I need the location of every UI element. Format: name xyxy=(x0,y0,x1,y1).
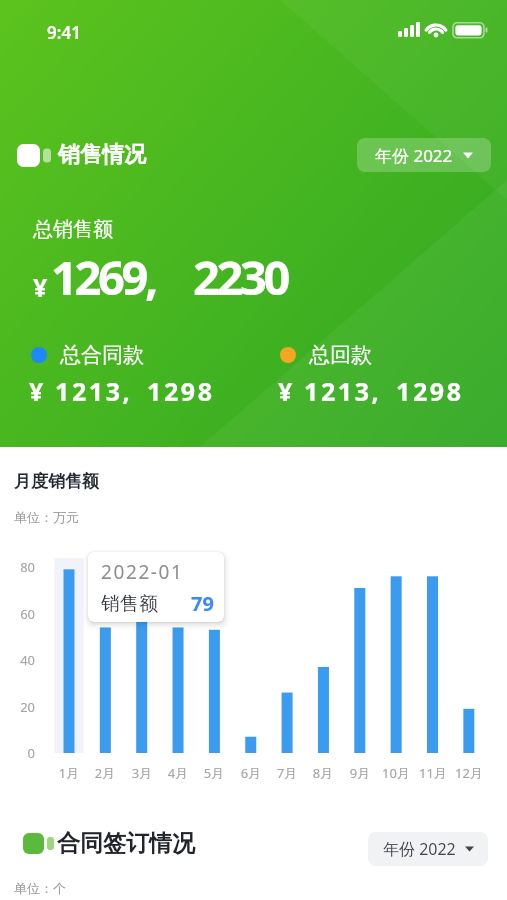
staticText: 总回款 xyxy=(309,342,372,368)
staticText: 7月 xyxy=(267,764,307,782)
staticText: 9月 xyxy=(340,764,380,782)
staticText: 1298 xyxy=(147,374,215,408)
staticText: 1月 xyxy=(49,764,89,782)
staticText: 11月 xyxy=(413,764,453,782)
staticText: 6月 xyxy=(231,764,271,782)
staticText: 销售额 xyxy=(101,592,158,616)
staticText: 总合同款 xyxy=(60,342,144,368)
staticText: 3月 xyxy=(122,764,162,782)
staticText: 8月 xyxy=(303,764,343,782)
staticText: 40 xyxy=(6,651,35,669)
staticText: 2月 xyxy=(85,764,125,782)
staticText: 年份 2022 xyxy=(383,838,456,860)
staticText: 10月 xyxy=(376,764,416,782)
button[interactable]: 年份 2022 xyxy=(357,138,491,172)
staticText: 合同签订情况 xyxy=(57,829,195,858)
staticText: 总销售额 xyxy=(33,217,113,242)
staticText: ¥ 1213, xyxy=(29,374,133,408)
button[interactable]: 年份 2022 xyxy=(368,832,488,866)
staticText: 单位：万元 xyxy=(14,509,79,525)
staticText: 80 xyxy=(6,558,35,576)
staticText: 12月 xyxy=(449,764,489,782)
staticText: 单位：个 xyxy=(14,880,66,896)
staticText: ¥ xyxy=(33,270,48,304)
staticText: 60 xyxy=(6,605,35,623)
staticText: 销售情况 xyxy=(58,141,146,169)
staticText: 1298 xyxy=(396,374,464,408)
staticText: ¥ 1213, xyxy=(278,374,382,408)
staticText: 2230 xyxy=(193,245,287,309)
staticText: 月度销售额 xyxy=(14,471,99,492)
staticText: 2022-01 xyxy=(101,559,184,585)
staticText: 20 xyxy=(6,698,35,716)
staticText: 0 xyxy=(6,744,35,762)
staticText: 4月 xyxy=(158,764,198,782)
staticText: 5月 xyxy=(194,764,234,782)
staticText: 9:41 xyxy=(47,21,81,44)
staticText: 79 xyxy=(191,590,214,617)
staticText: 1269, xyxy=(51,245,155,309)
staticText: 年份 2022 xyxy=(375,144,453,167)
